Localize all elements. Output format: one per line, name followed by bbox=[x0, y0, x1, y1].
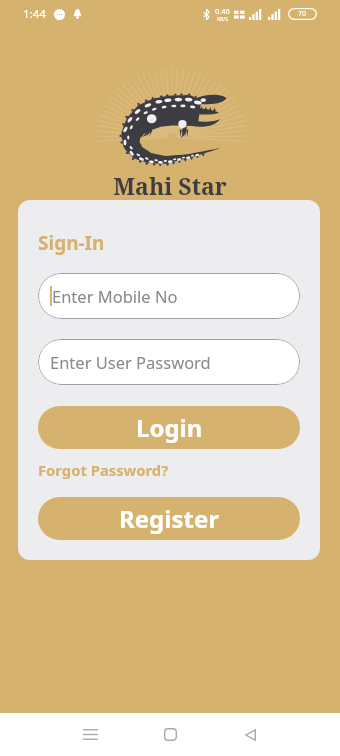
staticText: 70 bbox=[298, 9, 307, 19]
staticText: KB/S bbox=[217, 16, 228, 23]
staticText: Login bbox=[136, 411, 203, 444]
staticText: 0.46 bbox=[215, 6, 230, 16]
staticText: Sign-In bbox=[38, 230, 105, 256]
button[interactable]: Enter User Password bbox=[38, 339, 300, 385]
button[interactable]: Forgot Password? bbox=[38, 460, 169, 480]
button[interactable]: Home bbox=[146, 713, 194, 756]
button[interactable]: Enter Mobile No bbox=[38, 273, 300, 319]
button[interactable]: Register bbox=[38, 497, 300, 540]
staticText: Mahi Star bbox=[0, 170, 340, 201]
staticText: Forgot Password? bbox=[38, 460, 169, 480]
button[interactable]: Recents bbox=[66, 713, 114, 756]
staticText: 1:44 bbox=[23, 6, 46, 22]
staticText: Register bbox=[119, 502, 219, 535]
button[interactable]: Login bbox=[38, 406, 300, 449]
button[interactable]: Back bbox=[226, 713, 274, 756]
staticText: Enter User Password bbox=[50, 351, 211, 373]
staticText: Enter Mobile No bbox=[52, 285, 178, 307]
